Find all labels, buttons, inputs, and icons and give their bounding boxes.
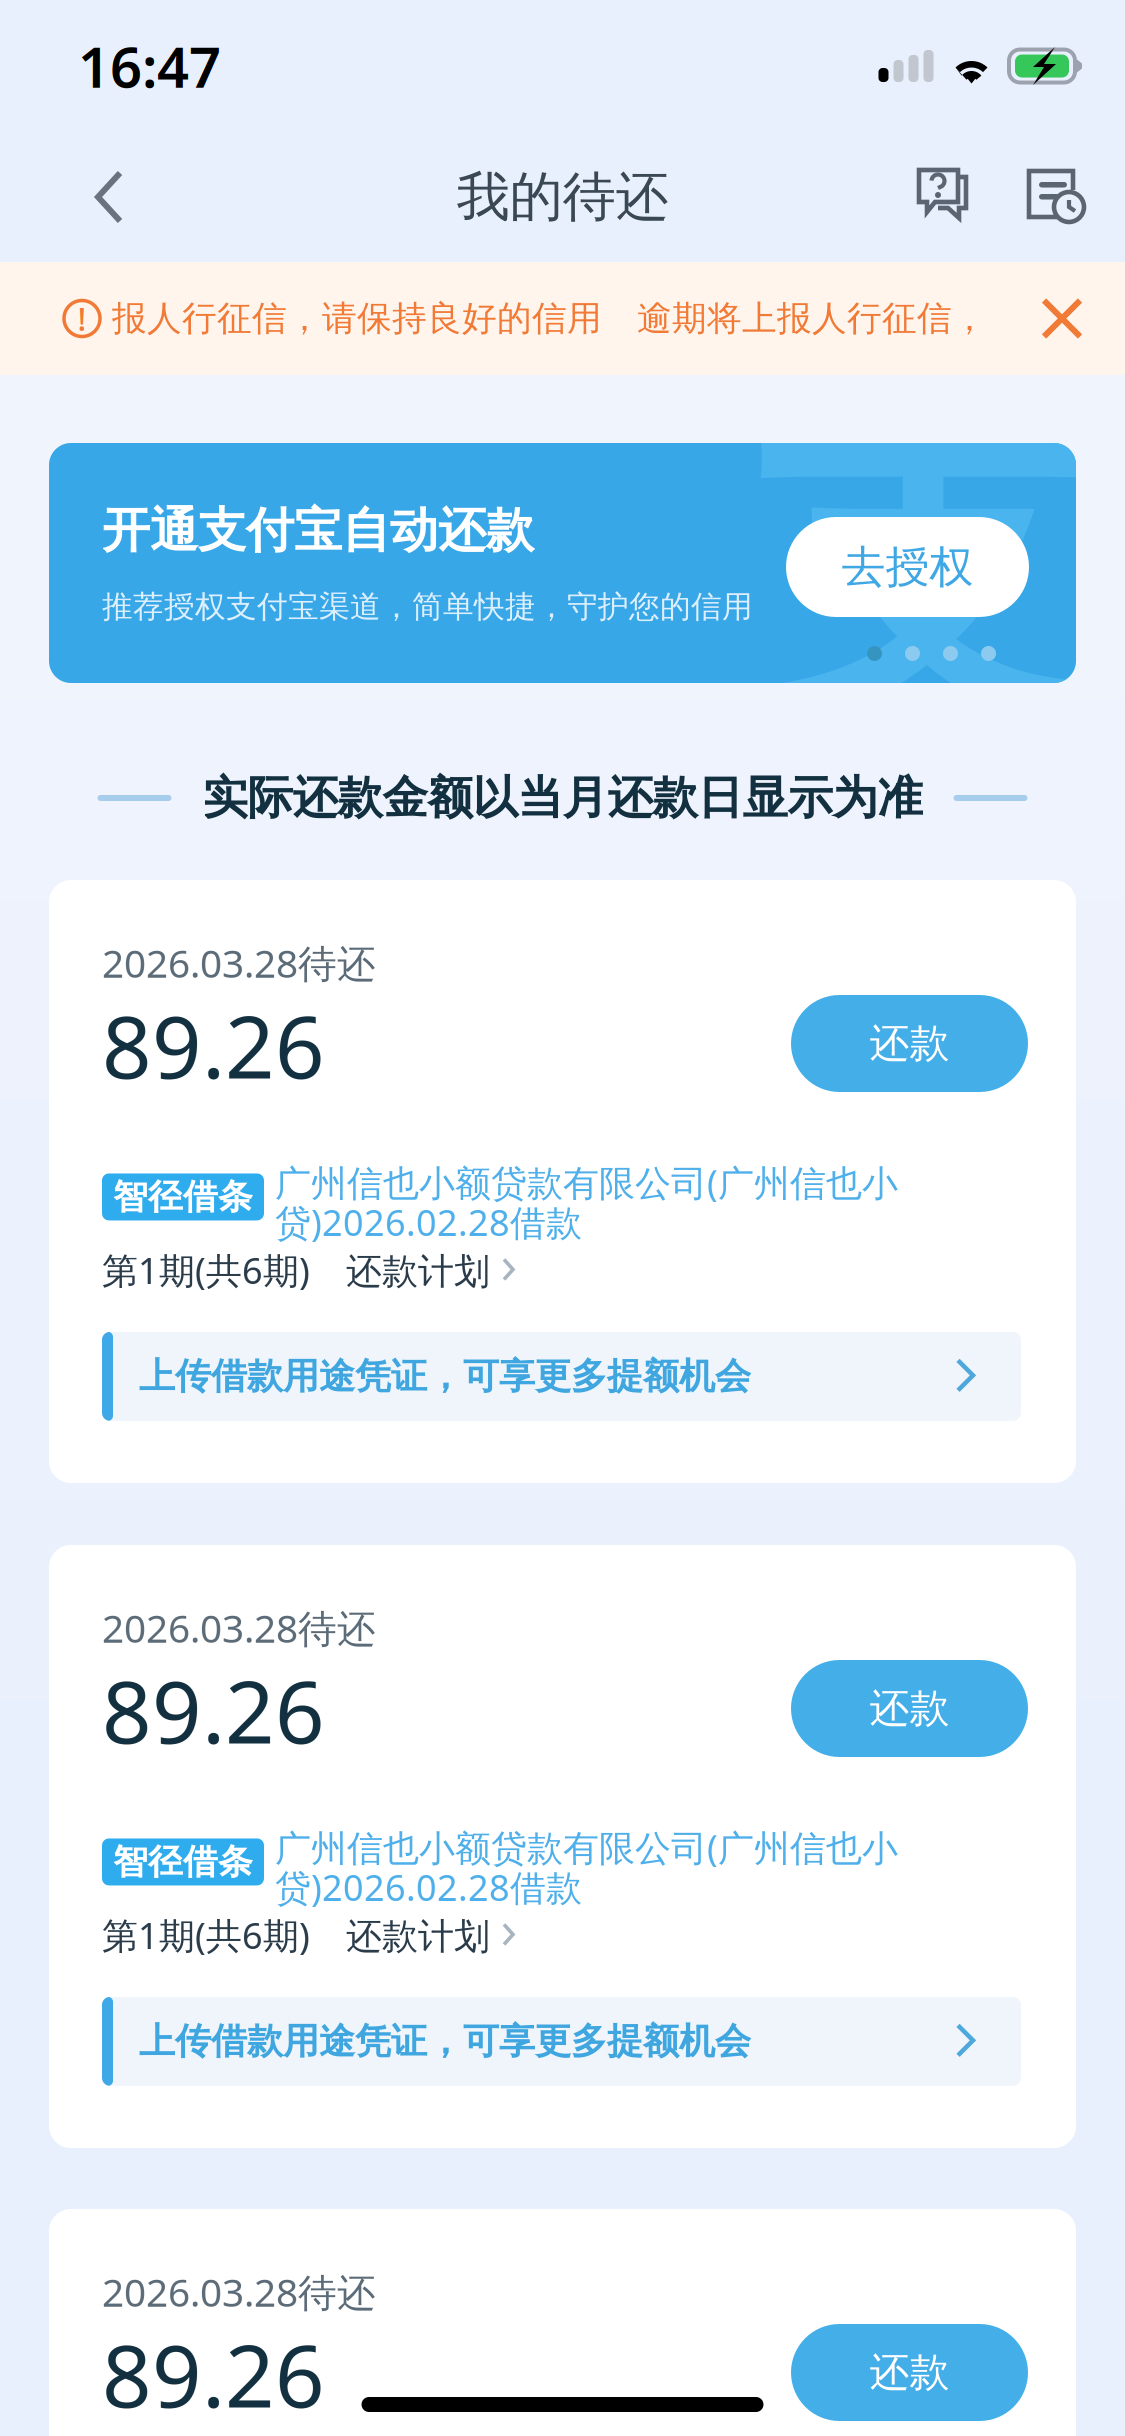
staticText: 2026.03.28待还 xyxy=(102,937,376,988)
button[interactable]: 第1期(共6期) 还款计划 xyxy=(102,1246,517,1294)
button[interactable]: History xyxy=(1010,152,1100,242)
staticText: 上传借款用途凭证，可享更多提额机会 xyxy=(139,1354,751,1398)
staticText: 上传借款用途凭证，可享更多提额机会 xyxy=(139,2019,751,2063)
button[interactable]: 上传借款用途凭证，可享更多提额机会 xyxy=(102,1332,1021,1421)
staticText: 16:47 xyxy=(78,29,221,103)
staticText: 第1期(共6期) 还款计划 xyxy=(102,1911,490,1959)
button[interactable]: 还款 xyxy=(791,2324,1028,2421)
staticText: 推荐授权支付宝渠道，简单快捷，守护您的信用 xyxy=(102,588,753,626)
staticText: 支 xyxy=(747,351,1100,785)
button[interactable]: 还款 xyxy=(791,1660,1028,1757)
staticText: 还款 xyxy=(869,2348,949,2397)
staticText: 2026.03.28待还 xyxy=(102,1602,376,1653)
staticText: 89.26 xyxy=(102,1652,325,1767)
staticText: 实际还款金额以当月还款日显示为准 xyxy=(202,770,922,826)
staticText: 89.26 xyxy=(102,2316,325,2431)
staticText: 第1期(共6期) 还款计划 xyxy=(102,1246,490,1294)
staticText: 还款 xyxy=(869,1684,949,1733)
button[interactable]: 支 xyxy=(49,443,1076,683)
staticText: 智径借条 xyxy=(113,1176,253,1218)
staticText: 我的待还 xyxy=(456,164,668,230)
staticText: 89.26 xyxy=(102,987,325,1102)
staticText: 智径借条 xyxy=(113,1841,253,1883)
button[interactable]: Help xyxy=(898,152,988,242)
button[interactable]: Close xyxy=(1027,283,1097,353)
button[interactable]: Back xyxy=(62,150,156,244)
staticText: 还款 xyxy=(869,1019,949,1068)
button[interactable]: 上传借款用途凭证，可享更多提额机会 xyxy=(102,1997,1021,2086)
button[interactable]: 第1期(共6期) 还款计划 xyxy=(102,1911,517,1959)
button[interactable]: 还款 xyxy=(791,995,1028,1092)
staticText: 广州信也小额贷款有限公司(广州信也小贷)2026.02.28借款 xyxy=(275,1823,898,1911)
staticText: 2026.03.28待还 xyxy=(102,2266,376,2317)
staticText: ! xyxy=(77,297,86,340)
staticText: 开通支付宝自动还款 xyxy=(102,501,534,560)
staticText: 报人行征信，请保持良好的信用 逾期将上报人行征信， xyxy=(112,297,987,340)
staticText: 去授权 xyxy=(841,540,973,594)
staticText: 广州信也小额贷款有限公司(广州信也小贷)2026.02.28借款 xyxy=(275,1158,898,1246)
